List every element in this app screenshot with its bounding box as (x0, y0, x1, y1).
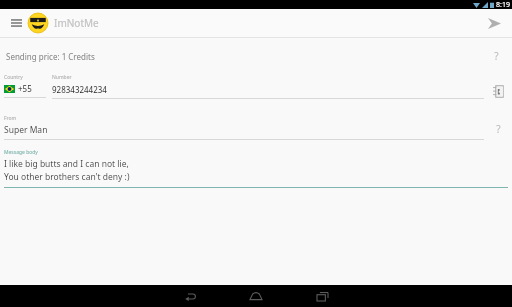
staticText: You other brothers can't deny :) (4, 171, 130, 183)
button[interactable]: 928343244234 (52, 84, 484, 95)
button[interactable]: Home (245, 285, 267, 307)
staticText: From (4, 115, 17, 122)
button[interactable]: Help (488, 119, 508, 139)
staticText: Sending price: 1 Credits (6, 51, 95, 62)
staticText: Super Man (4, 124, 48, 136)
staticText: Country (4, 74, 23, 81)
staticText: +55 (18, 83, 32, 94)
staticText: 8:19 (496, 0, 510, 9)
staticText: ImNotMe (54, 16, 99, 30)
staticText: 928343244234 (52, 84, 107, 95)
button[interactable]: Super Man (4, 124, 484, 136)
staticText: ? (494, 49, 499, 63)
button[interactable]: Recent apps (311, 285, 333, 307)
staticText: Message body (4, 149, 38, 156)
button[interactable]: Send message (482, 11, 506, 35)
button[interactable]: Back (179, 285, 201, 307)
staticText: ? (496, 122, 501, 136)
staticText: I like big butts and I can not lie, (4, 158, 129, 170)
button[interactable]: Help (486, 46, 506, 66)
staticText: Number (52, 74, 72, 81)
button[interactable]: Pick contact (488, 81, 508, 101)
button[interactable]: Open navigation menu (6, 13, 26, 33)
button[interactable]: +55 (4, 83, 32, 94)
button[interactable]: I like big butts and I can not lie, (4, 158, 508, 183)
